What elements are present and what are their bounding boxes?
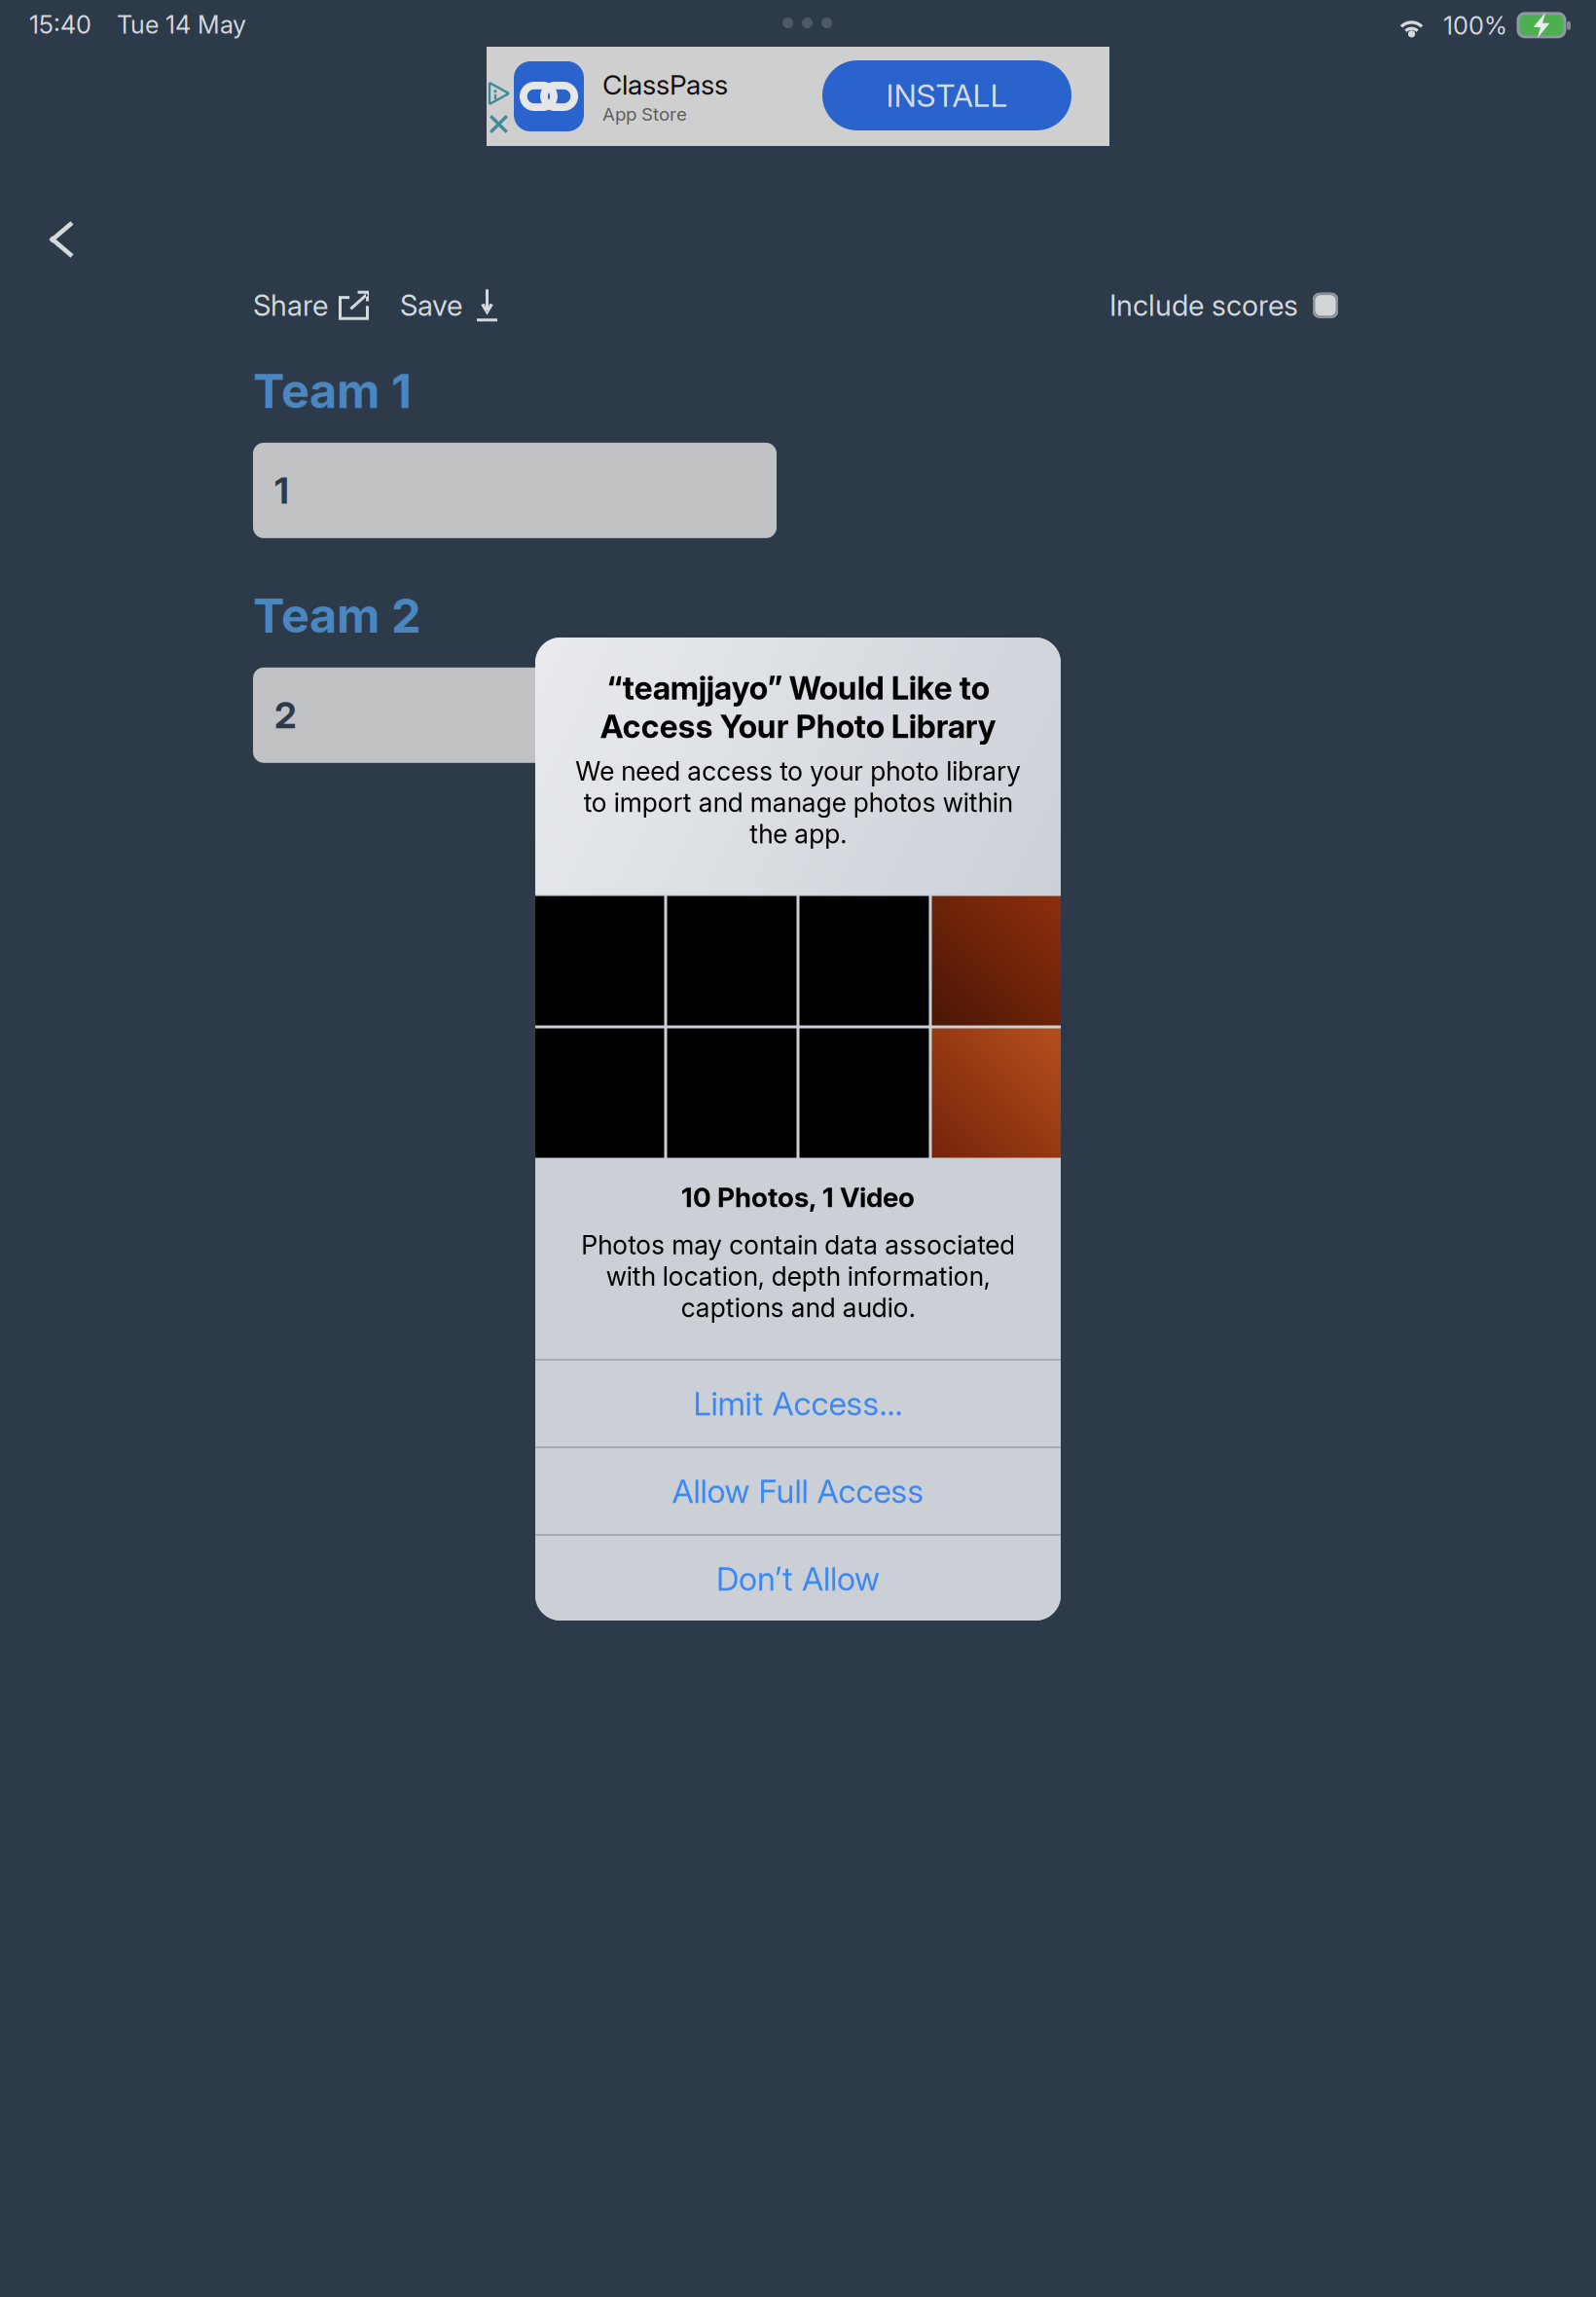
staticText: 10 Photos, 1 Video xyxy=(681,1181,915,1214)
staticText: Tue 14 May xyxy=(117,10,246,40)
staticText: ClassPass xyxy=(602,68,728,101)
staticText: Save xyxy=(400,288,462,323)
staticText: App Store xyxy=(602,103,687,125)
staticText: Team 1 xyxy=(253,362,412,419)
staticText: INSTALL xyxy=(886,77,1008,114)
staticText: 100% xyxy=(1443,11,1507,41)
button[interactable]: INSTALL xyxy=(822,60,1071,130)
staticText: Limit Access... xyxy=(693,1384,903,1423)
button[interactable]: Back xyxy=(31,201,93,277)
staticText: Allow Full Access xyxy=(672,1471,924,1511)
button[interactable]: Include scores xyxy=(1102,280,1346,330)
button[interactable]: Save xyxy=(392,280,505,330)
button[interactable]: Share xyxy=(245,280,377,330)
staticText: We need access to your photo library to … xyxy=(575,755,1021,850)
staticText: 15:40 xyxy=(29,10,91,40)
staticText: 1 xyxy=(274,468,289,512)
button[interactable]: Allow Full Access xyxy=(535,1448,1061,1534)
button[interactable]: Limit Access... xyxy=(535,1361,1061,1446)
staticText: Don’t Allow xyxy=(716,1559,880,1598)
staticText: Photos may contain data associated with … xyxy=(581,1229,1015,1323)
staticText: Share xyxy=(253,288,328,323)
staticText: Team 2 xyxy=(253,587,421,644)
staticText: 2 xyxy=(274,693,297,737)
button[interactable]: Don’t Allow xyxy=(535,1536,1061,1622)
staticText: Include scores xyxy=(1109,288,1298,323)
staticText: “teamjjayo” Would Like to Access Your Ph… xyxy=(600,669,996,746)
